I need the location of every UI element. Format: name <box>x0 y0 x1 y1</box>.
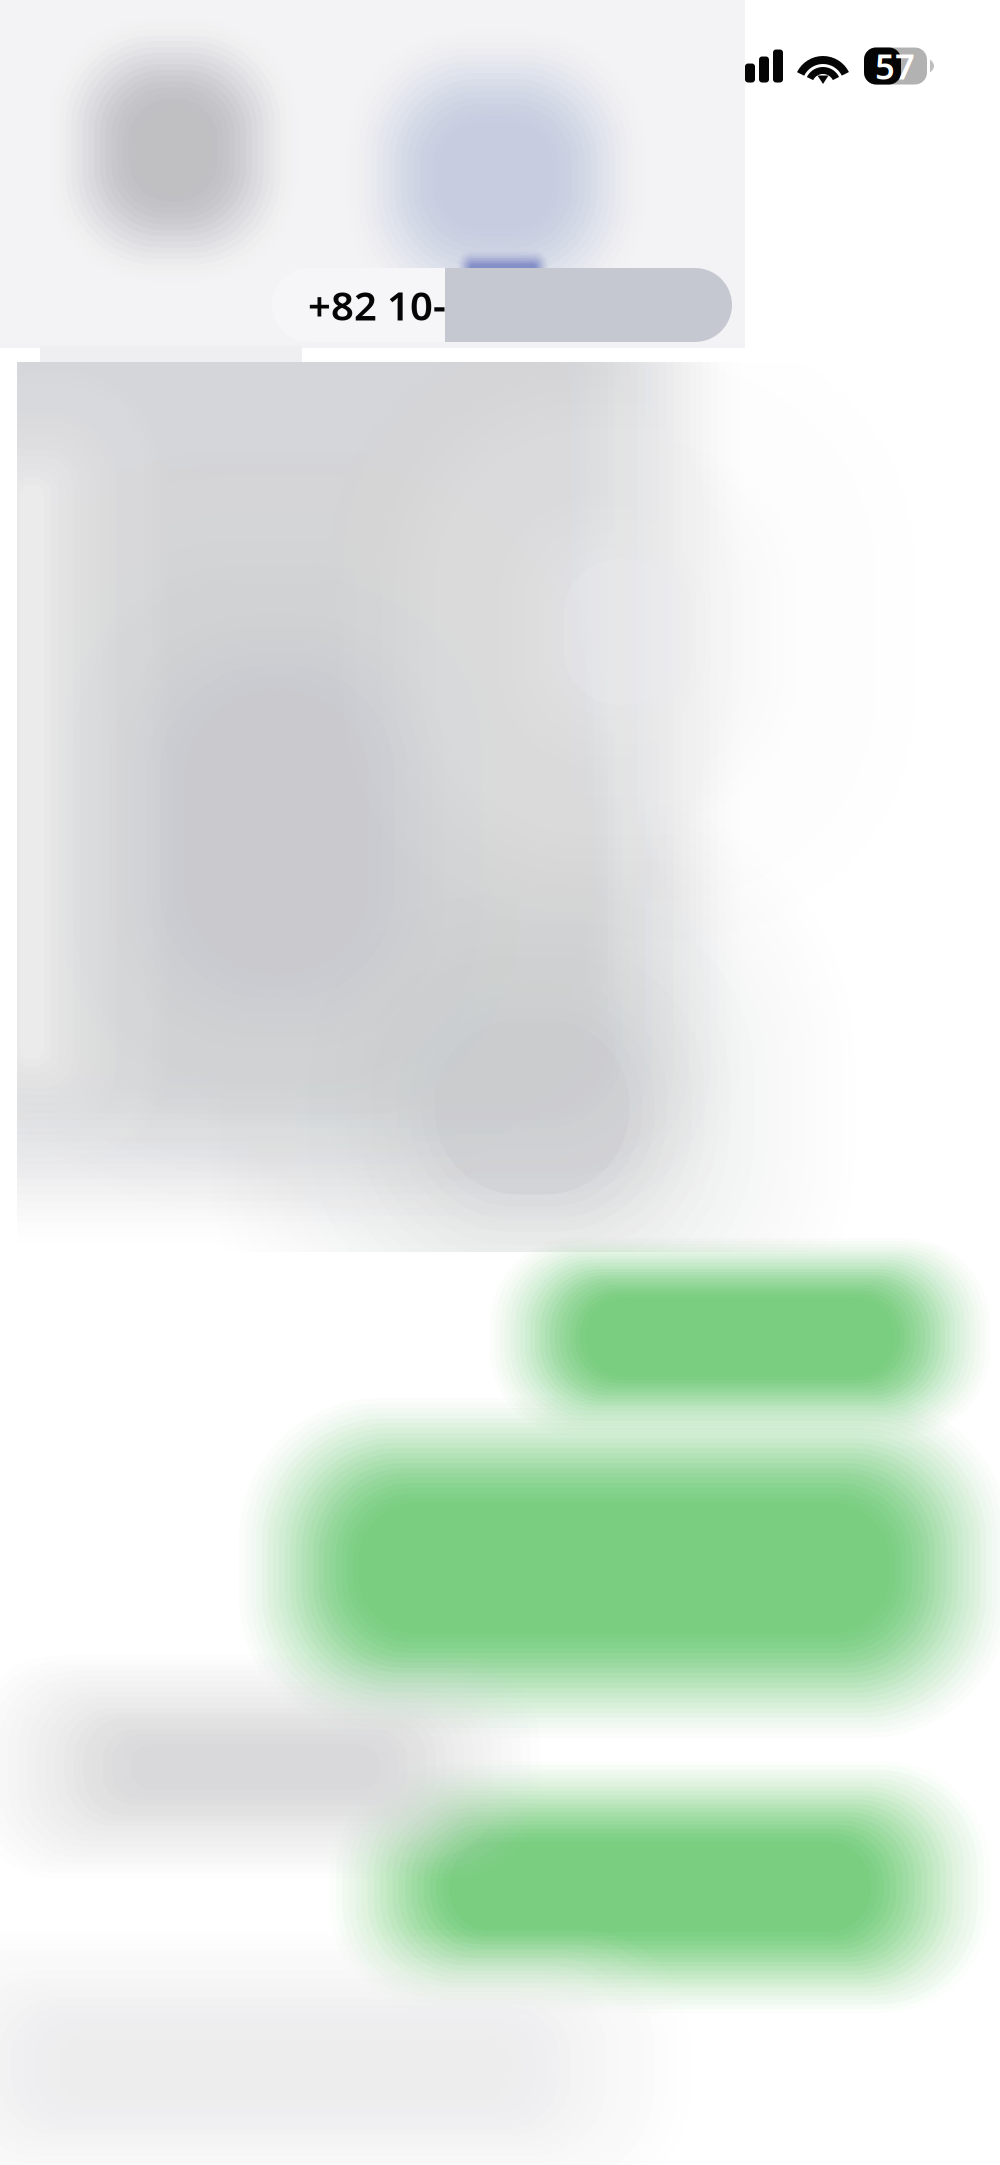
staticText: 57 <box>875 43 915 89</box>
staticText: +82 10- <box>308 278 446 331</box>
button[interactable]: +82 10- <box>272 268 732 342</box>
